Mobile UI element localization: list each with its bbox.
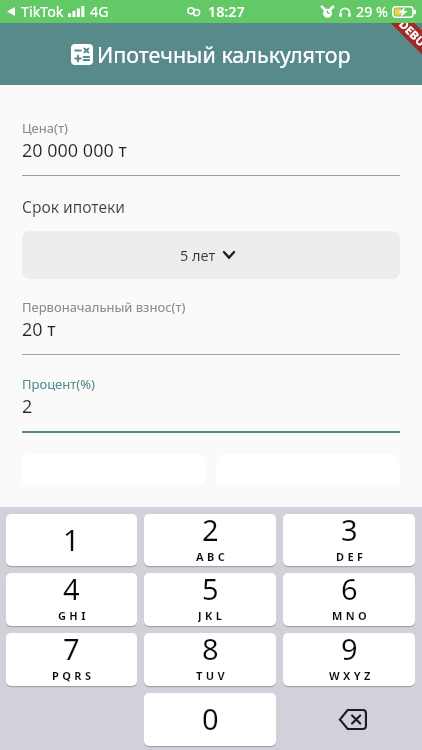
button[interactable]: 0 <box>144 693 276 746</box>
staticText: PQRS <box>52 668 95 682</box>
staticText: 20 000 000 т <box>22 138 127 163</box>
button[interactable]: 3 <box>283 514 415 566</box>
button[interactable]: 2 <box>144 514 276 566</box>
button[interactable]: 7 <box>6 633 137 686</box>
staticText: 7 <box>63 633 80 668</box>
staticText: 2 <box>22 394 33 419</box>
staticText: WXYZ <box>329 668 374 682</box>
staticText: 2 <box>202 514 219 549</box>
staticText: Цена(т) <box>22 119 68 137</box>
staticText: 9 <box>341 633 358 668</box>
staticText: Первоначальный взнос(т) <box>22 298 186 316</box>
button[interactable]: 6 <box>283 573 415 626</box>
staticText: 5 <box>202 573 219 608</box>
staticText: 0 <box>202 699 219 738</box>
staticText: DEF <box>336 549 367 562</box>
staticText: 6 <box>341 573 358 608</box>
staticText: 1 <box>63 520 80 559</box>
button[interactable]: 5 лет <box>22 231 400 279</box>
staticText: 5 лет <box>180 245 216 265</box>
staticText: Процент(%) <box>22 375 95 393</box>
staticText: ABC <box>196 549 229 562</box>
staticText: Срок ипотеки <box>22 196 125 217</box>
staticText: Ипотечный калькулятор <box>97 40 351 69</box>
button[interactable]: 1 <box>6 514 137 566</box>
staticText: 4G <box>90 2 109 21</box>
button[interactable]: 8 <box>144 633 276 686</box>
staticText: 20 т <box>22 317 56 342</box>
staticText: 8 <box>202 633 219 668</box>
staticText: GHI <box>58 608 89 622</box>
staticText: MNO <box>332 608 371 622</box>
button[interactable]: 9 <box>283 633 415 686</box>
staticText: JKL <box>198 608 226 622</box>
staticText: TUV <box>196 668 229 682</box>
staticText: DEBUG <box>395 23 422 56</box>
button[interactable]: Backspace <box>283 693 415 746</box>
button[interactable]: 4 <box>6 573 137 626</box>
staticText: 29 % <box>356 2 388 21</box>
staticText: 18:27 <box>208 2 245 21</box>
staticText: 3 <box>341 514 358 549</box>
staticText: TikTok <box>21 2 64 21</box>
button[interactable]: 5 <box>144 573 276 626</box>
staticText: 4 <box>63 573 80 608</box>
